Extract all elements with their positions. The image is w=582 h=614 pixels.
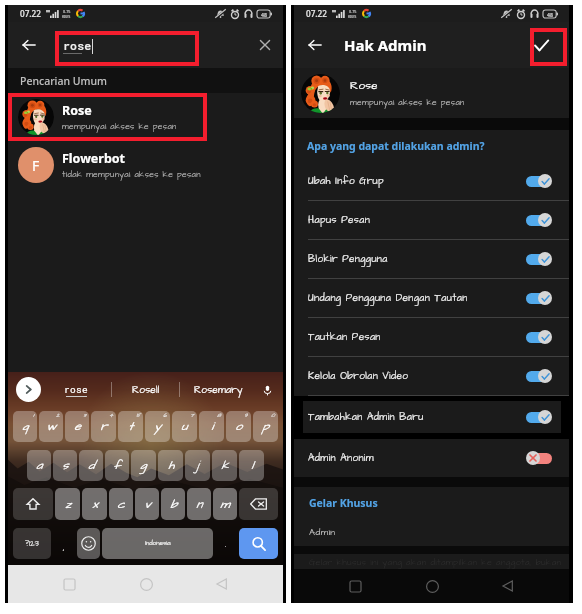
button[interactable]: ?123 bbox=[13, 528, 51, 559]
staticText: n bbox=[196, 496, 202, 513]
staticText: j bbox=[196, 457, 199, 474]
button[interactable]: Voice input bbox=[257, 380, 277, 400]
staticText: 07.22 bbox=[306, 8, 327, 19]
button[interactable]: Recents bbox=[340, 571, 370, 601]
staticText: 9 bbox=[244, 412, 248, 420]
staticText: c bbox=[117, 496, 125, 513]
button[interactable]: c bbox=[109, 488, 133, 520]
staticText: 0 bbox=[271, 412, 275, 420]
button[interactable]: w bbox=[39, 411, 63, 442]
button[interactable]: Kelola Obrolan Video bbox=[294, 357, 569, 395]
button[interactable]: F bbox=[8, 141, 283, 189]
staticText: Apa yang dapat dilakukan admin? bbox=[307, 139, 485, 153]
staticText: m bbox=[220, 496, 230, 513]
button[interactable]: m bbox=[213, 488, 237, 520]
staticText: y bbox=[154, 418, 161, 435]
button[interactable]: Admin Anonim bbox=[294, 439, 569, 477]
staticText: l bbox=[251, 457, 253, 474]
button[interactable]: Back bbox=[493, 571, 523, 601]
button[interactable]: Tautkan Pesan bbox=[294, 318, 569, 356]
button[interactable]: Recents bbox=[54, 569, 84, 599]
button[interactable]: Hapus Pesan bbox=[294, 201, 569, 239]
staticText: F bbox=[32, 156, 40, 175]
staticText: w bbox=[46, 418, 56, 435]
button[interactable]: r bbox=[91, 411, 116, 442]
staticText: k bbox=[221, 457, 229, 474]
button[interactable]: Indonesia bbox=[102, 528, 213, 559]
staticText: Tambahkan Admin Baru bbox=[308, 410, 424, 424]
staticText: KB/S bbox=[62, 14, 71, 19]
staticText: Admin Anonim bbox=[308, 451, 374, 465]
button[interactable] bbox=[77, 528, 100, 559]
staticText: ?123 bbox=[25, 538, 39, 549]
button[interactable]: b bbox=[161, 488, 185, 520]
button[interactable]: Back bbox=[294, 24, 336, 66]
button[interactable]: u bbox=[172, 411, 197, 442]
button[interactable]: Ubah Info Grup bbox=[294, 162, 569, 200]
button[interactable]: Home bbox=[131, 569, 161, 599]
staticText: Rosell bbox=[132, 383, 160, 397]
staticText: . bbox=[225, 538, 227, 551]
staticText: mempunyai akses ke pesan bbox=[350, 97, 465, 109]
button[interactable] bbox=[13, 488, 53, 520]
staticText: i bbox=[211, 418, 213, 435]
button[interactable]: , bbox=[52, 528, 76, 559]
button[interactable]: l bbox=[239, 450, 264, 481]
button[interactable]: Undang Pengguna Dengan Tautan bbox=[294, 279, 569, 317]
staticText: tidak mempunyai akses ke pesan bbox=[62, 169, 201, 181]
button[interactable]: o bbox=[226, 411, 251, 442]
staticText: 48 bbox=[547, 11, 553, 18]
button[interactable]: . bbox=[214, 528, 238, 559]
button[interactable]: Back bbox=[8, 24, 50, 66]
button[interactable]: z bbox=[55, 488, 80, 520]
button[interactable]: Done bbox=[523, 27, 560, 64]
staticText: a bbox=[36, 457, 43, 474]
button[interactable]: v bbox=[135, 488, 159, 520]
staticText: e bbox=[74, 418, 81, 435]
staticText: q bbox=[22, 418, 29, 435]
button[interactable]: n bbox=[187, 488, 211, 520]
button[interactable]: Rose bbox=[294, 68, 569, 118]
staticText: Indonesia bbox=[145, 539, 171, 548]
staticText: u bbox=[181, 418, 188, 435]
button[interactable]: s bbox=[53, 450, 77, 481]
button[interactable]: Tambahkan Admin Baru bbox=[303, 401, 561, 433]
staticText: Blokir Pengguna bbox=[308, 252, 388, 266]
button[interactable]: Search bbox=[239, 528, 278, 559]
staticText: 3 bbox=[83, 412, 86, 420]
button[interactable]: Rose bbox=[8, 93, 283, 141]
button[interactable]: Blokir Pengguna bbox=[294, 240, 569, 278]
button[interactable]: k bbox=[212, 450, 237, 481]
staticText: Ubah Info Grup bbox=[308, 174, 385, 188]
button[interactable]: t bbox=[118, 411, 143, 442]
button[interactable]: f bbox=[105, 450, 129, 481]
button[interactable]: y bbox=[145, 411, 170, 442]
staticText: d bbox=[88, 457, 95, 474]
button[interactable]: Home bbox=[417, 571, 447, 601]
staticText: Kelola Obrolan Video bbox=[308, 369, 409, 383]
button[interactable]: j bbox=[185, 450, 210, 481]
button[interactable]: g bbox=[131, 450, 156, 481]
button[interactable]: p bbox=[253, 411, 278, 442]
staticText: Admin bbox=[309, 526, 336, 539]
button[interactable]: x bbox=[82, 488, 107, 520]
button[interactable]: Clear search bbox=[248, 28, 282, 62]
button[interactable]: a bbox=[27, 450, 51, 481]
staticText: 8 bbox=[217, 412, 221, 420]
staticText: Tautkan Pesan bbox=[308, 330, 381, 344]
staticText: , bbox=[63, 541, 65, 554]
staticText: Flowerbot bbox=[62, 150, 126, 167]
staticText: 6 bbox=[163, 412, 167, 420]
button[interactable]: q bbox=[13, 411, 37, 442]
button[interactable]: e bbox=[65, 411, 89, 442]
button[interactable]: d bbox=[79, 450, 103, 481]
button[interactable]: i bbox=[199, 411, 224, 442]
button[interactable]: Expand suggestions bbox=[16, 377, 41, 402]
staticText: p bbox=[262, 418, 269, 435]
button[interactable] bbox=[239, 488, 278, 520]
button[interactable]: Back bbox=[207, 569, 237, 599]
staticText: Hak Admin bbox=[344, 35, 427, 55]
staticText: KB/S bbox=[348, 14, 357, 19]
staticText: x bbox=[92, 496, 98, 513]
button[interactable]: h bbox=[158, 450, 183, 481]
